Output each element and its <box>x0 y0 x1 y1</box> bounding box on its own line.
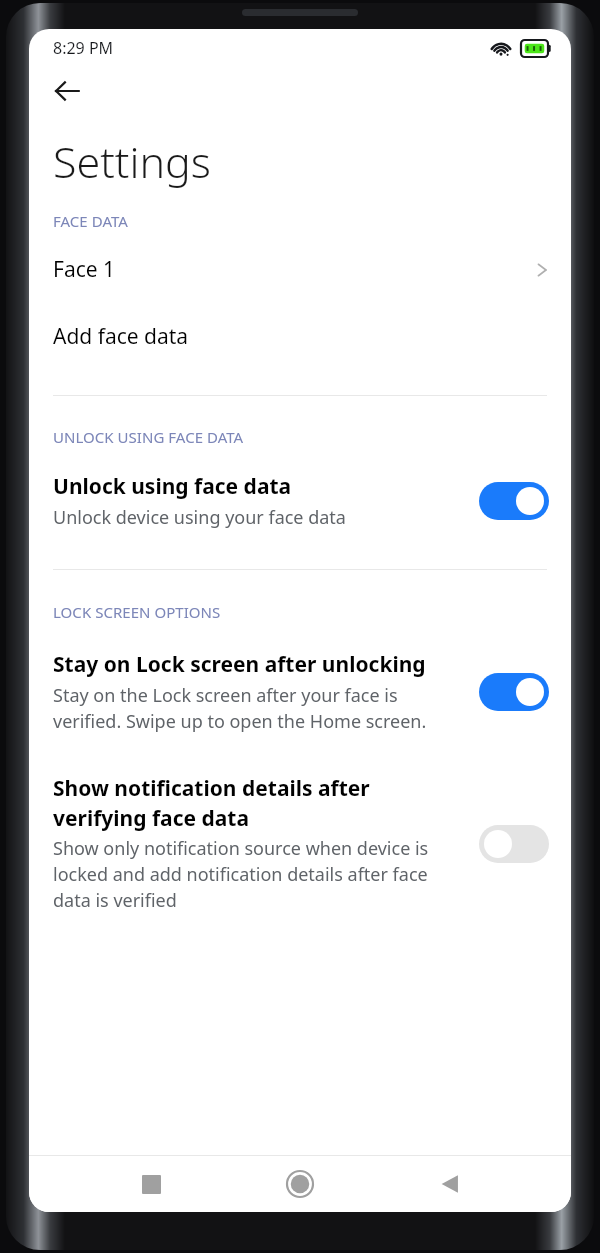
button[interactable]: Back <box>422 1156 478 1212</box>
button[interactable]: On <box>479 482 549 520</box>
staticText: Face 1 <box>53 255 533 284</box>
staticText: LOCK SCREEN OPTIONS <box>53 602 221 622</box>
staticText: FACE DATA <box>53 211 128 231</box>
staticText: Add face data <box>53 322 189 351</box>
button[interactable]: Stay on Lock screen after unlocking <box>29 650 571 734</box>
button[interactable]: On <box>479 673 549 711</box>
button[interactable]: Add face data <box>29 322 571 351</box>
staticText: Unlock device using your face data <box>53 505 346 530</box>
staticText: Settings <box>53 132 211 191</box>
button[interactable]: Face 1 <box>29 255 571 284</box>
button[interactable]: Home <box>272 1156 328 1212</box>
button[interactable]: Off <box>479 825 549 863</box>
button[interactable]: Show notification details after verifyin… <box>29 774 571 913</box>
staticText: Show notification details after verifyin… <box>53 774 463 832</box>
button[interactable]: Back <box>41 66 93 116</box>
staticText: Stay on the Lock screen after your face … <box>53 683 463 734</box>
staticText: Unlock using face data <box>53 472 292 501</box>
button[interactable]: Unlock using face data <box>29 472 571 530</box>
staticText: 8:29 PM <box>53 37 114 59</box>
staticText: UNLOCK USING FACE DATA <box>53 427 244 447</box>
staticText: Stay on Lock screen after unlocking <box>53 650 426 679</box>
staticText: Show only notification source when devic… <box>53 836 463 913</box>
button[interactable]: Recent apps <box>123 1156 179 1212</box>
